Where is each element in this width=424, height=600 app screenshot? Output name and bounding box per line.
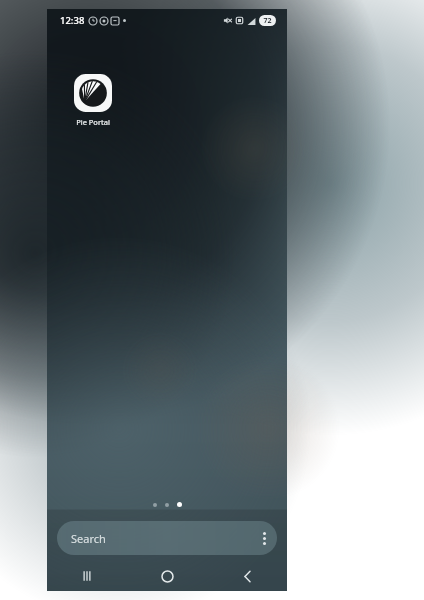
staticText: Pie Portal [76,117,110,127]
button[interactable]: Page 1 [153,503,157,507]
button[interactable]: Back [207,561,287,591]
staticText: 12:38 [60,14,85,27]
button[interactable]: More options [251,525,277,551]
button[interactable]: Search [57,521,277,555]
button[interactable]: Page 2 [165,503,169,507]
button[interactable]: Recent apps [47,561,127,591]
button[interactable]: Page 3, current [177,502,182,507]
staticText: 72 [263,16,272,26]
staticText: Search [71,531,106,546]
button[interactable]: Home [127,561,207,591]
button[interactable]: Pie Portal [65,74,121,127]
